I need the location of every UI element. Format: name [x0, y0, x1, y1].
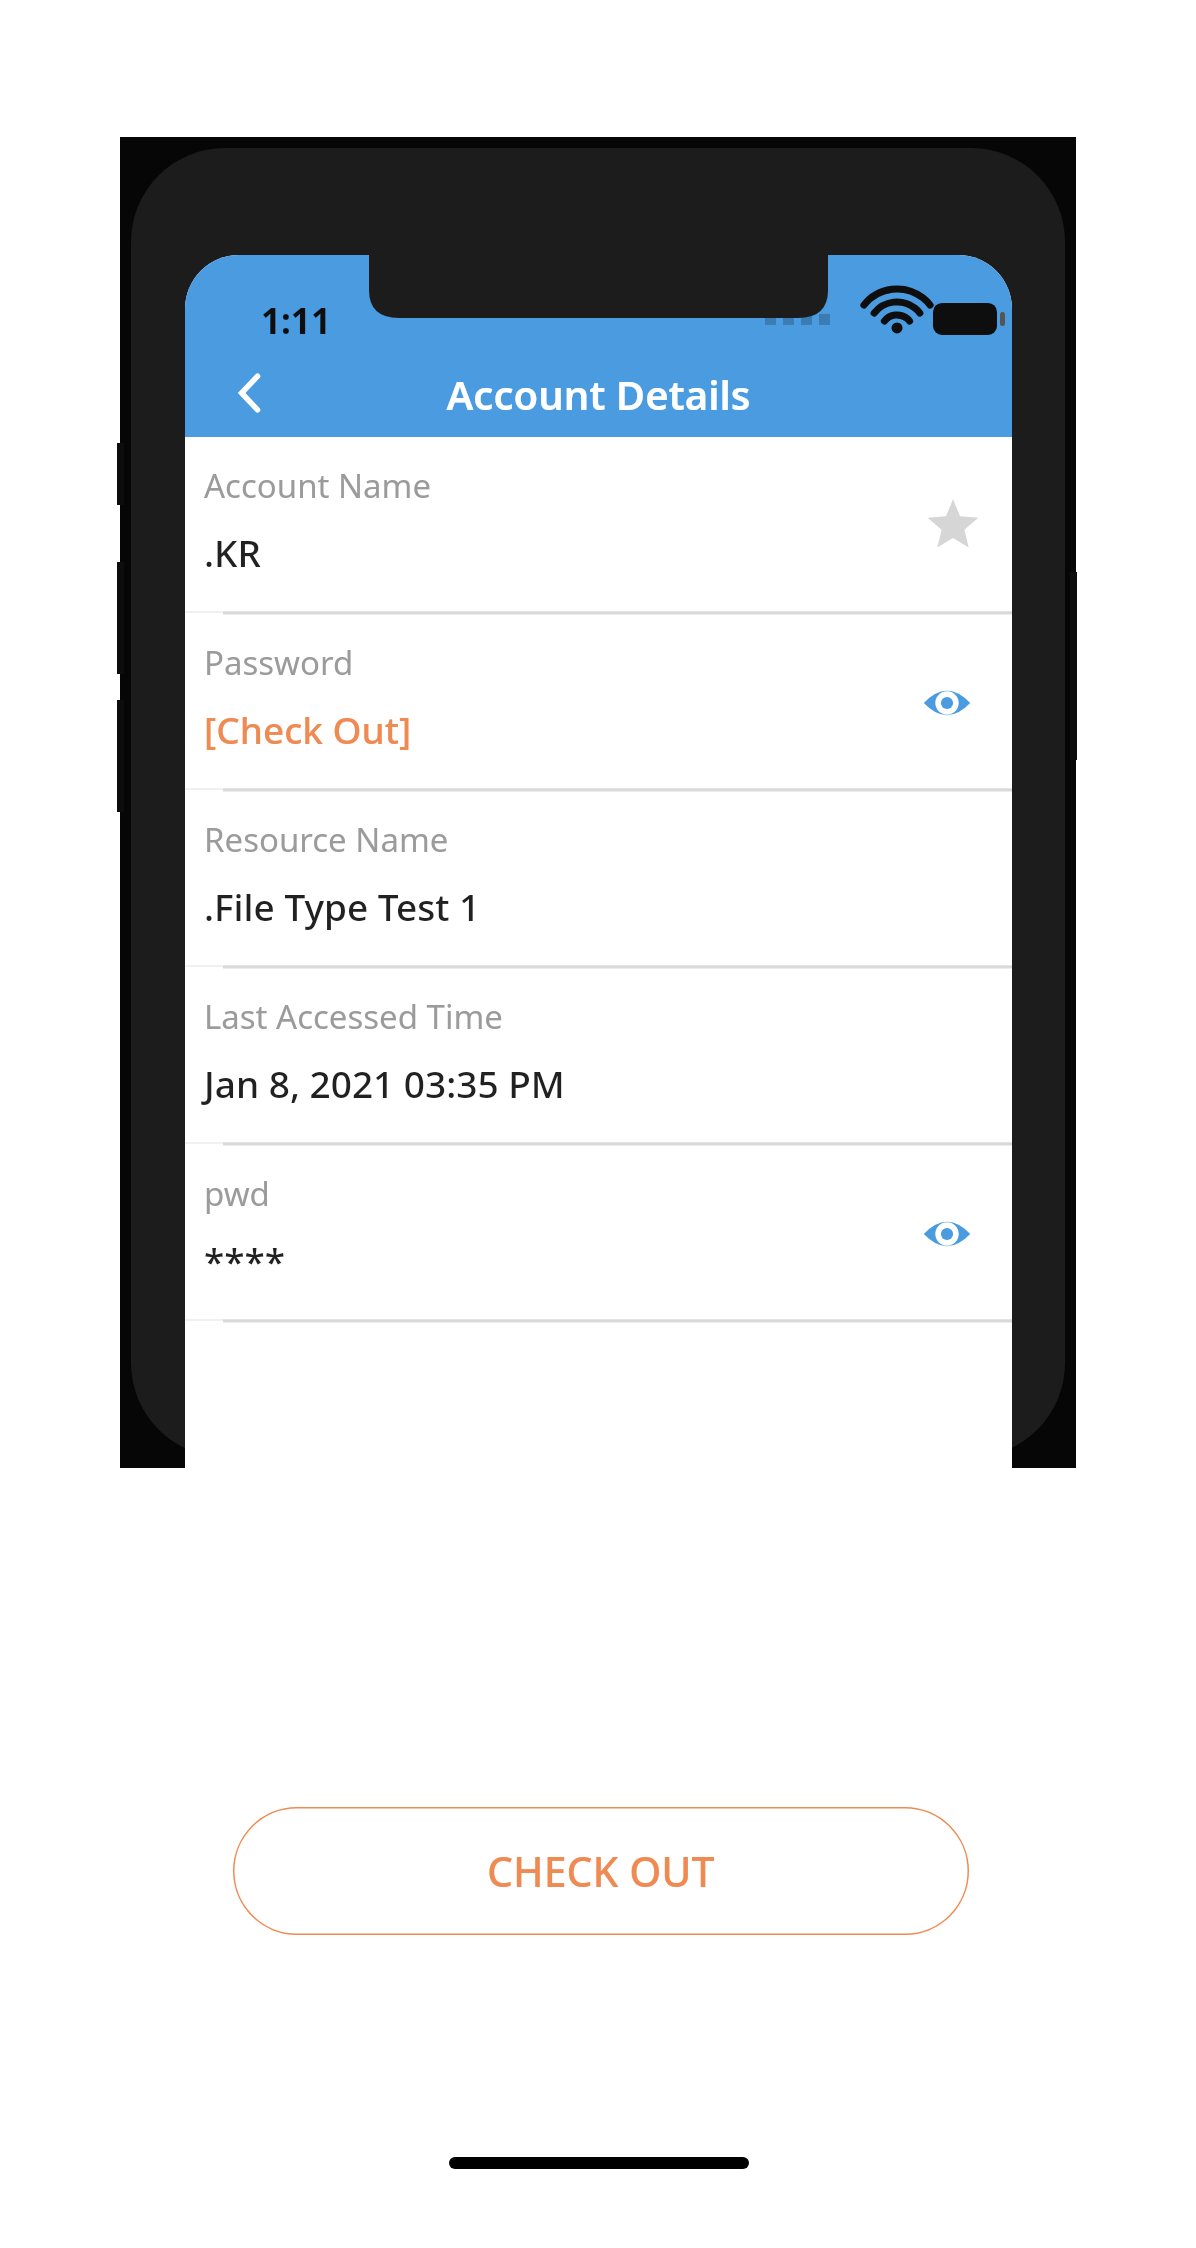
button[interactable]: Account Name [185, 437, 1012, 614]
staticText: Resource Name [204, 817, 449, 862]
staticText: Account Details [185, 367, 1012, 421]
button[interactable]: Show password [918, 1205, 976, 1263]
staticText: [Check Out] [204, 704, 412, 754]
button[interactable]: Favourite [924, 497, 982, 555]
button[interactable]: pwd [185, 1145, 1012, 1322]
staticText: Account Name [204, 463, 432, 508]
staticText: CHECK OUT [487, 1843, 715, 1899]
staticText: .File Type Test 1 [204, 881, 481, 931]
button[interactable]: Password [185, 614, 1012, 791]
staticText: Password [204, 640, 354, 685]
button[interactable]: Show password [918, 674, 976, 732]
button[interactable]: Resource Name [185, 791, 1012, 968]
staticText: Jan 8, 2021 03:35 PM [204, 1058, 565, 1108]
staticText: .KR [204, 527, 261, 577]
staticText: 1:11 [261, 297, 331, 345]
button[interactable]: Last Accessed Time [185, 968, 1012, 1145]
button[interactable]: CHECK OUT [233, 1807, 969, 1935]
staticText: Last Accessed Time [204, 994, 503, 1039]
button[interactable]: Back [205, 353, 295, 433]
staticText: pwd [204, 1171, 270, 1216]
staticText: **** [204, 1235, 286, 1285]
